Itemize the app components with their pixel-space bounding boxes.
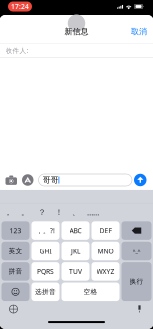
button[interactable]: Apps: [17, 174, 33, 186]
staticText: 取消: [131, 27, 147, 36]
button[interactable]: TUV: [61, 262, 89, 281]
staticText: DEF: [99, 226, 111, 235]
staticText: ABC: [69, 226, 81, 235]
button[interactable]: ……: [84, 203, 101, 221]
button[interactable]: 换行: [121, 262, 151, 301]
staticText: WXYZ: [96, 267, 114, 276]
staticText: ，。?!: [36, 226, 55, 235]
staticText: ^_^: [132, 247, 140, 255]
staticText: 选拼音: [35, 288, 56, 296]
button[interactable]: Delete: [121, 221, 151, 240]
button[interactable]: Camera: [5, 174, 17, 186]
staticText: ？: [38, 207, 46, 217]
button[interactable]: ！: [50, 203, 67, 221]
staticText: ……: [87, 207, 99, 218]
staticText: 收件人:: [5, 46, 28, 55]
button[interactable]: ABC: [61, 221, 89, 240]
button[interactable]: 选拼音: [31, 282, 59, 301]
button[interactable]: 取消: [125, 23, 153, 40]
button[interactable]: ，。?!: [31, 221, 59, 240]
staticText: 。: [21, 207, 29, 217]
button[interactable]: Send: [132, 174, 146, 186]
staticText: 英文: [8, 247, 22, 255]
button[interactable]: MNO: [91, 242, 119, 260]
staticText: 空格: [83, 288, 97, 296]
button[interactable]: GHI: [31, 242, 59, 260]
button[interactable]: 英文: [1, 242, 29, 260]
button[interactable]: WXYZ: [91, 262, 119, 281]
button[interactable]: 拼音: [1, 262, 29, 281]
button[interactable]: PQRS: [31, 262, 59, 281]
staticText: ，: [4, 207, 12, 217]
staticText: 17:24: [11, 2, 29, 11]
staticText: 新信息: [64, 27, 88, 36]
button[interactable]: ，: [0, 203, 16, 221]
button[interactable]: 空格: [61, 282, 119, 301]
button[interactable]: Dictation: [135, 301, 153, 313]
button[interactable]: Switch keyboard: [0, 301, 17, 313]
button[interactable]: ？: [33, 203, 50, 221]
staticText: 拼音: [8, 267, 22, 275]
button[interactable]: Emoji: [1, 282, 29, 301]
staticText: MNO: [97, 247, 113, 255]
staticText: 哥哥: [42, 175, 58, 185]
staticText: PQRS: [37, 267, 54, 276]
staticText: GHI: [39, 247, 51, 255]
staticText: 123: [9, 226, 21, 235]
button[interactable]: DEF: [91, 221, 119, 240]
staticText: 换行: [129, 277, 143, 286]
staticText: ！: [55, 207, 63, 217]
button[interactable]: 、: [67, 203, 84, 221]
button[interactable]: 。: [16, 203, 33, 221]
staticText: JKL: [71, 247, 80, 255]
button[interactable]: 123: [1, 221, 29, 240]
button[interactable]: JKL: [61, 242, 89, 260]
staticText: TUV: [69, 267, 82, 276]
staticText: 、: [72, 207, 80, 217]
button[interactable]: Kaomoji: [121, 242, 151, 260]
